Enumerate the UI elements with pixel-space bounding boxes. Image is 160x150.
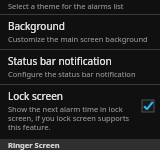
staticText: Lock screen	[8, 89, 64, 103]
button[interactable]: Enabled checkbox	[142, 100, 154, 112]
staticText: Customize the main screen background	[8, 34, 148, 44]
staticText: Ringer Screen	[8, 140, 60, 150]
button[interactable]: Background	[0, 15, 160, 49]
staticText: Show the next alarm time in lock screen,…	[8, 104, 136, 132]
staticText: Configure the status bar notification	[8, 69, 136, 79]
staticText: Status bar notification	[8, 54, 112, 68]
button[interactable]: Lock screen	[0, 85, 160, 136]
staticText: Background	[8, 19, 65, 33]
button[interactable]: Status bar notification	[0, 50, 160, 84]
button[interactable]: Select a theme for the alarms list	[0, 0, 160, 14]
staticText: Select a theme for the alarms list	[8, 1, 124, 11]
